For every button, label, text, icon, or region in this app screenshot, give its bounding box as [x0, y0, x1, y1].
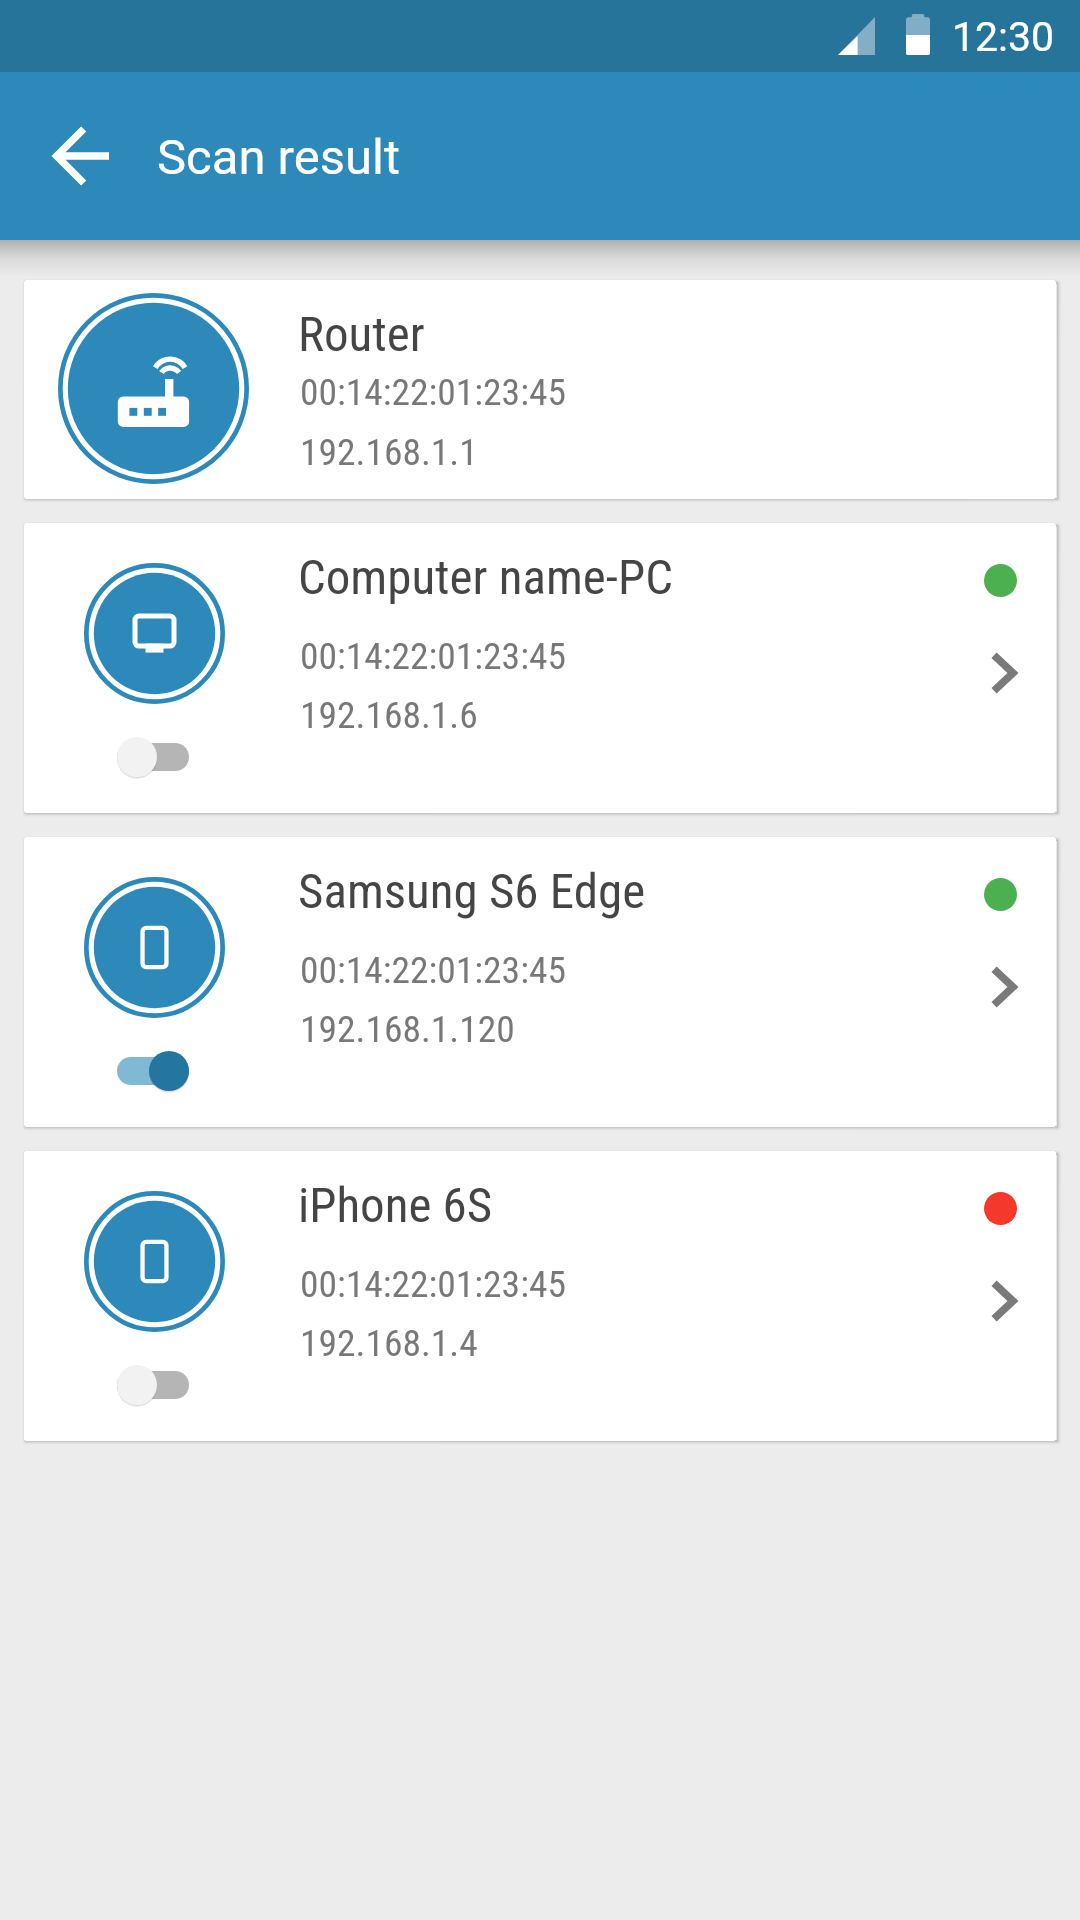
staticText: iPhone 6S [298, 1177, 493, 1234]
button[interactable]: Toggle off [117, 1363, 197, 1407]
staticText: 192.168.1.1 [300, 430, 478, 474]
button[interactable]: Back [42, 117, 120, 195]
button[interactable]: Status [960, 854, 1040, 934]
button[interactable]: Status [960, 1168, 1040, 1248]
staticText: 192.168.1.120 [300, 1007, 515, 1051]
staticText: 00:14:22:01:23:45 [300, 948, 566, 992]
staticText: 00:14:22:01:23:45 [300, 634, 566, 678]
staticText: 00:14:22:01:23:45 [300, 370, 566, 414]
staticText: Computer name-PC [298, 549, 673, 606]
button[interactable]: Router [24, 280, 1056, 499]
button[interactable]: Toggle off [117, 735, 197, 779]
button[interactable]: Status [960, 540, 1040, 620]
staticText: 192.168.1.4 [300, 1321, 478, 1365]
staticText: Scan result [157, 129, 400, 186]
button[interactable]: Toggle off [24, 523, 1056, 813]
button[interactable]: Toggle on [24, 837, 1056, 1127]
button[interactable]: Toggle off [24, 1151, 1056, 1441]
button[interactable]: Open details [963, 633, 1043, 713]
button[interactable]: Toggle on [117, 1049, 197, 1093]
button[interactable]: Open details [963, 947, 1043, 1027]
staticText: 00:14:22:01:23:45 [300, 1262, 566, 1306]
staticText: 12:30 [952, 13, 1055, 61]
staticText: 192.168.1.6 [300, 693, 478, 737]
staticText: Samsung S6 Edge [298, 863, 646, 920]
button[interactable]: Open details [963, 1261, 1043, 1341]
staticText: Router [298, 306, 425, 363]
